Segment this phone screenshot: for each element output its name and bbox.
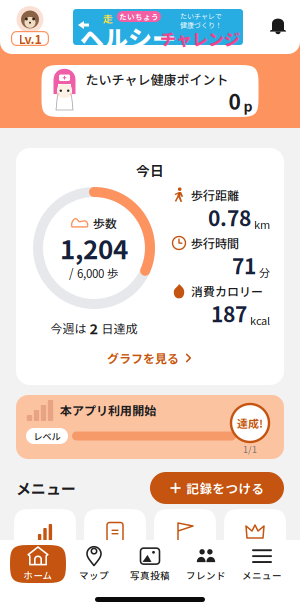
- staticText: kcal: [250, 312, 270, 328]
- button[interactable]: グラフを見る: [85, 346, 215, 370]
- staticText: チャレンジ: [160, 27, 240, 50]
- staticText: メニュー: [16, 477, 76, 499]
- staticText: km: [254, 216, 270, 232]
- staticText: 今日: [136, 160, 164, 180]
- button[interactable]: [154, 509, 216, 575]
- staticText: 1,204: [60, 229, 128, 267]
- button[interactable]: 通知: [264, 12, 292, 42]
- button[interactable]: ホーム: [10, 545, 66, 583]
- button[interactable]: 本アプリ利用開始: [16, 395, 284, 459]
- staticText: たいチャレで: [180, 11, 222, 21]
- staticText: フレンド: [186, 568, 226, 582]
- button[interactable]: [14, 509, 76, 575]
- staticText: ホーム: [23, 568, 52, 582]
- staticText: 今週は: [50, 319, 89, 337]
- staticText: p: [243, 95, 252, 116]
- staticText: マップ: [79, 568, 109, 582]
- button[interactable]: メニュー: [234, 545, 290, 583]
- button[interactable]: フレンド: [178, 545, 234, 583]
- button[interactable]: [224, 509, 286, 575]
- button[interactable]: [84, 509, 146, 575]
- staticText: たいチャレ健康ポイント: [85, 70, 228, 88]
- button[interactable]: Lv.1: [8, 5, 52, 49]
- staticText: 日達成: [98, 319, 137, 337]
- staticText: 達成!: [237, 415, 263, 431]
- staticText: 歩数: [93, 214, 117, 232]
- staticText: 187: [211, 298, 247, 328]
- staticText: 記録をつける: [186, 479, 264, 497]
- staticText: 消費カロリー: [191, 282, 263, 300]
- staticText: たいちょう: [119, 11, 159, 22]
- staticText: 歩行時間: [191, 234, 239, 252]
- staticText: レベル: [33, 429, 60, 442]
- button[interactable]: マップ: [66, 545, 122, 583]
- staticText: 0.78: [208, 202, 251, 232]
- staticText: 歩行距離: [191, 186, 239, 204]
- button[interactable]: 記録をつける: [150, 472, 284, 504]
- staticText: 健康づくり！: [180, 20, 222, 30]
- staticText: 走: [103, 11, 113, 25]
- staticText: 本アプリ利用開始: [60, 401, 156, 419]
- staticText: 2: [89, 317, 98, 338]
- staticText: 0: [228, 85, 240, 116]
- staticText: 分: [259, 264, 270, 280]
- staticText: Lv.1: [18, 29, 41, 48]
- staticText: グラフを見る: [107, 349, 179, 367]
- staticText: / 6,000 歩: [69, 265, 119, 281]
- staticText: 1/1: [243, 442, 257, 455]
- staticText: 71: [232, 250, 256, 280]
- staticText: メニュー: [242, 568, 282, 582]
- button[interactable]: 写真投稿: [122, 545, 178, 583]
- staticText: 写真投稿: [130, 568, 170, 582]
- staticText: ヘルシー: [80, 20, 176, 55]
- button[interactable]: たいチャレ健康ポイント: [41, 65, 258, 117]
